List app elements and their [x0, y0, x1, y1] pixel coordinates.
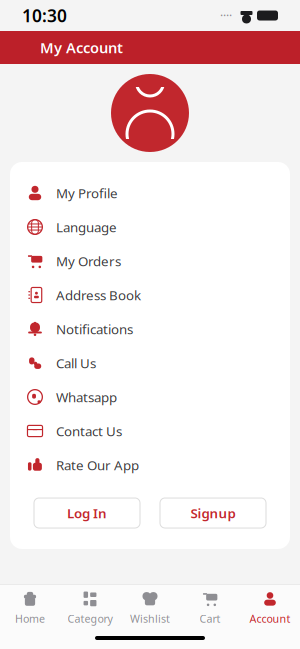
button[interactable]: Contact Us — [10, 414, 290, 448]
staticText: ···· — [220, 7, 232, 23]
staticText: Category — [67, 611, 112, 626]
staticText: Whatsapp — [56, 388, 117, 406]
button[interactable]: Home — [0, 582, 60, 630]
button[interactable]: Signup — [160, 498, 266, 528]
staticText: My Profile — [56, 184, 118, 202]
button[interactable]: Wishlist — [120, 582, 180, 630]
button[interactable]: Whatsapp — [10, 380, 290, 414]
staticText: My Orders — [56, 252, 121, 270]
button[interactable]: Account — [240, 582, 300, 630]
button[interactable]: Call Us — [10, 346, 290, 380]
button[interactable]: My Profile — [10, 176, 290, 210]
button[interactable]: Cart — [180, 582, 240, 630]
button[interactable]: Category — [60, 582, 120, 630]
staticText: Home — [15, 611, 45, 626]
staticText: Rate Our App — [56, 456, 139, 474]
staticText: Cart — [199, 611, 220, 626]
button[interactable]: My Orders — [10, 244, 290, 278]
staticText: Call Us — [56, 354, 96, 372]
button[interactable]: Rate Our App — [10, 448, 290, 482]
staticText: Language — [56, 218, 117, 236]
button[interactable]: Notifications — [10, 312, 290, 346]
staticText: 10:30 — [22, 4, 67, 27]
staticText: Signup — [190, 504, 235, 522]
staticText: Contact Us — [56, 422, 122, 440]
staticText: My Account — [40, 38, 123, 57]
button[interactable]: Language — [10, 210, 290, 244]
staticText: Address Book — [56, 286, 141, 304]
staticText: Wishlist — [130, 611, 170, 626]
button[interactable]: Address Book — [10, 278, 290, 312]
staticText: Log In — [67, 504, 107, 522]
button[interactable]: Log In — [34, 498, 140, 528]
staticText: Account — [249, 611, 290, 626]
staticText: Notifications — [56, 320, 133, 338]
